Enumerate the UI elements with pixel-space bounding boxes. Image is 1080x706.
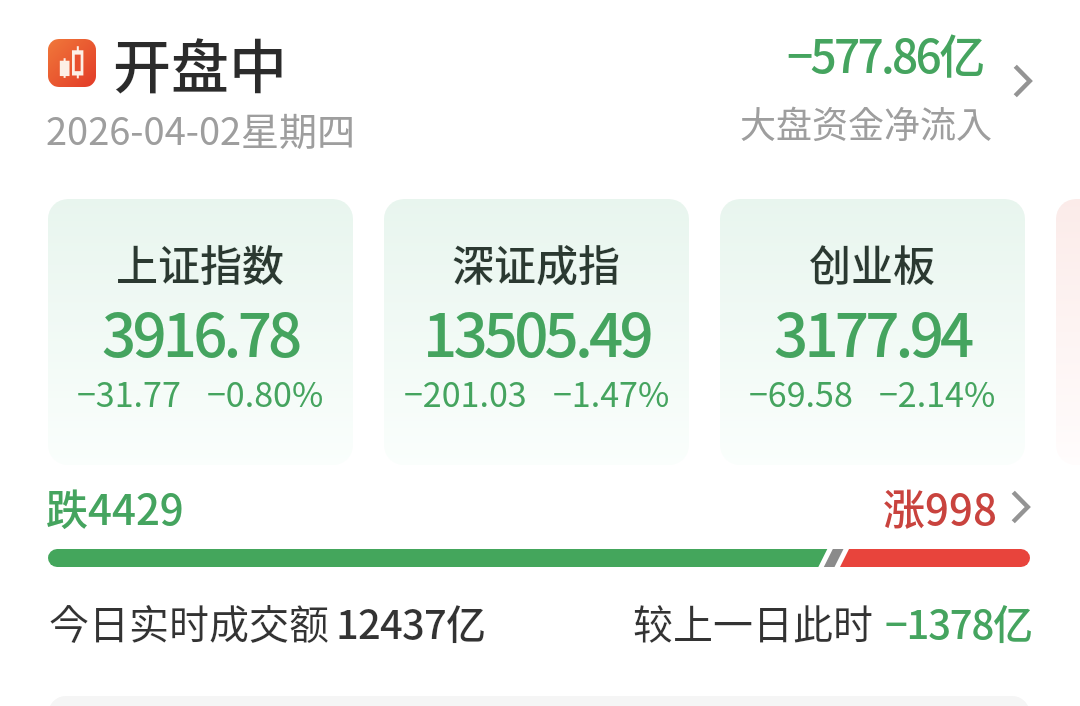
staticText: 今日实时成交额 — [49, 593, 329, 651]
staticText: −1.47% — [553, 368, 670, 417]
staticText: −0.80% — [207, 368, 324, 417]
staticText: 开盘中 — [113, 21, 288, 105]
staticText: 涨998 — [883, 476, 997, 537]
staticText: 3177.94 — [774, 287, 971, 374]
button[interactable]: 涨998 — [883, 476, 1030, 537]
button[interactable]: 大盘资金净流入 — [700, 12, 1050, 152]
staticText: 大盘资金净流入 — [740, 96, 993, 148]
staticText: 跌4429 — [46, 476, 184, 537]
staticText: −31.77 — [77, 368, 181, 417]
staticText: 2026-04-02星期四 — [46, 101, 356, 156]
staticText: 上证指数 — [116, 232, 285, 293]
button[interactable]: 深证成指 — [384, 199, 689, 465]
staticText: −69.58 — [749, 368, 853, 417]
button[interactable]: 创业板 — [720, 199, 1025, 465]
staticText: 深证成指 — [452, 232, 621, 293]
staticText: −201.03 — [404, 368, 527, 417]
staticText: 较上一日此时 — [633, 593, 873, 651]
staticText: 创业板 — [809, 232, 936, 293]
staticText: 12437亿 — [336, 593, 486, 651]
staticText: −1378亿 — [885, 593, 1032, 651]
button[interactable]: 跌4429 — [46, 476, 184, 537]
staticText: 13505.49 — [423, 287, 650, 374]
button[interactable]: 开盘中 — [48, 21, 288, 105]
button[interactable]: 上证指数 — [48, 199, 353, 465]
staticText: −577.86亿 — [787, 20, 983, 87]
staticText: −2.14% — [879, 368, 996, 417]
staticText: 3916.78 — [102, 287, 299, 374]
